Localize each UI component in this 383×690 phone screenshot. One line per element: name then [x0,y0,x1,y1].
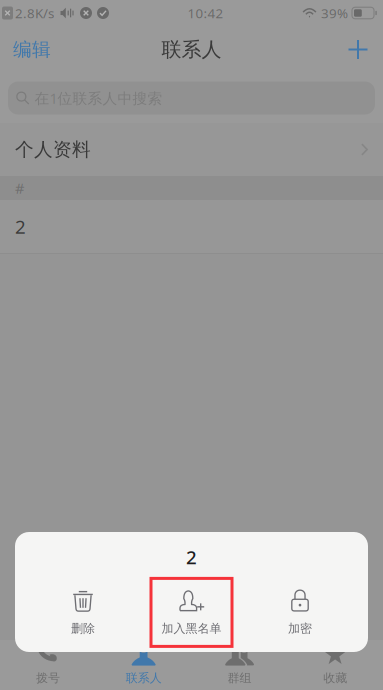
staticText: # [15,178,24,198]
staticText: 收藏 [323,671,347,685]
staticText: 10:42 [187,4,223,22]
staticText: 加密 [288,621,312,636]
button[interactable]: Add contact [333,26,383,73]
button[interactable]: 加密 [259,578,340,646]
button[interactable]: Search contacts [8,81,375,114]
button[interactable]: 收藏 [287,640,383,690]
staticText: 加入黑名单 [161,621,221,636]
button[interactable]: 编辑 [0,26,64,73]
staticText: 联系人 [126,671,162,685]
staticText: 联系人 [161,37,221,62]
button[interactable]: 2 [0,200,383,254]
button[interactable]: 删除 [42,578,123,646]
staticText: 2 [186,545,197,569]
staticText: 2.8K/s [15,4,54,22]
button[interactable]: 联系人 [96,640,192,690]
staticText: 拨号 [36,671,60,685]
staticText: 群组 [227,671,251,685]
staticText: 39% [321,4,348,22]
button[interactable]: 个人资料 [0,123,383,176]
button[interactable]: 拨号 [0,640,96,690]
staticText: 删除 [71,621,95,636]
button[interactable]: 群组 [191,640,287,690]
staticText: 编辑 [13,38,51,61]
staticText: 个人资料 [15,138,91,161]
staticText: 在1位联系人中搜索 [34,88,162,108]
button[interactable]: 加入黑名单 [151,578,232,646]
staticText: 2 [15,214,26,239]
